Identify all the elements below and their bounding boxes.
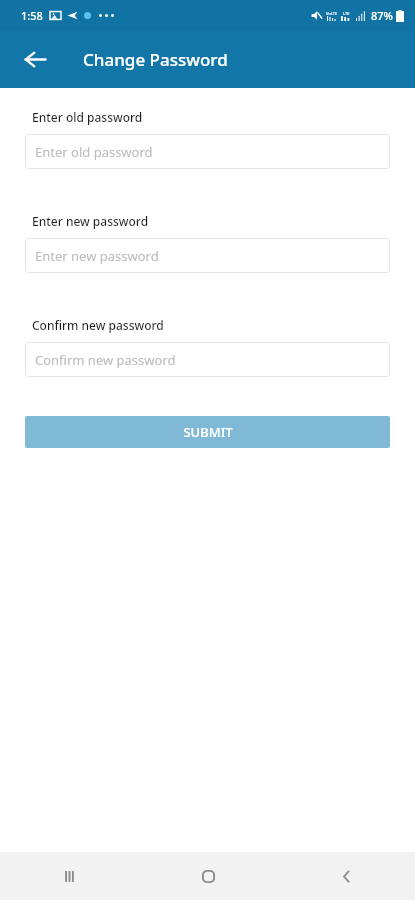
staticText: Enter old password [35, 143, 153, 161]
button[interactable]: Enter old password [25, 134, 390, 169]
staticText: Confirm new password [32, 317, 164, 333]
staticText: VoLTE [326, 11, 338, 16]
button[interactable]: Home [139, 852, 277, 900]
button[interactable]: Enter new password [25, 238, 390, 273]
staticText: 1:58 [21, 8, 43, 23]
staticText: LTE [343, 11, 350, 16]
button[interactable]: SUBMIT [25, 416, 390, 448]
staticText: Enter old password [32, 109, 143, 125]
staticText: 87% [371, 8, 393, 23]
button[interactable]: Back [277, 852, 415, 900]
staticText: SUBMIT [183, 423, 233, 441]
staticText: Enter new password [35, 247, 159, 265]
button[interactable]: Recents [0, 852, 139, 900]
button[interactable]: Confirm new password [25, 342, 390, 377]
staticText: Confirm new password [35, 351, 176, 369]
button[interactable]: Back [13, 37, 57, 81]
staticText: Change Password [83, 48, 228, 71]
staticText: Enter new password [32, 213, 149, 229]
